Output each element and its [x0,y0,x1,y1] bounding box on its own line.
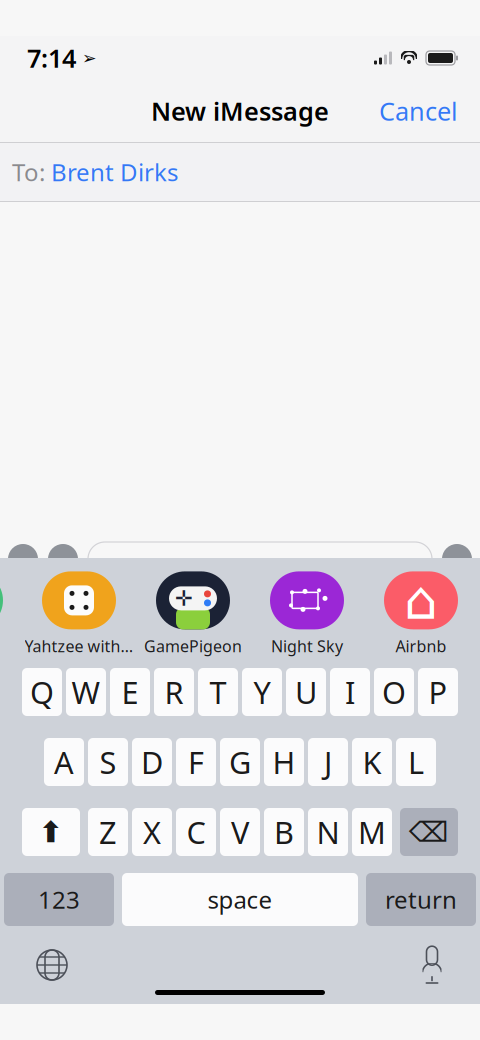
staticText: ✛ [175,586,193,610]
staticText: L [408,742,424,782]
staticText: H [272,742,295,782]
staticText: GamePigeon [144,635,242,657]
staticText: O [382,672,406,712]
button[interactable]: P [418,668,458,716]
button[interactable]: V [220,808,260,856]
staticText: C [186,812,205,852]
button[interactable]: F [176,738,216,786]
button[interactable]: Q [22,668,62,716]
button[interactable]: O [374,668,414,716]
button[interactable]: C [176,808,216,856]
button[interactable]: Cancel [365,84,472,138]
button[interactable]: M [352,808,392,856]
button[interactable]: Dictation [406,940,458,990]
staticText: J [324,742,332,782]
staticText: A [54,742,74,782]
staticText: V [231,812,249,852]
button[interactable]: U [286,668,326,716]
staticText: return [385,884,457,915]
staticText: S [99,742,116,782]
staticText: Q [30,672,54,712]
staticText: space [207,884,272,915]
staticText: N [316,812,339,852]
button[interactable]: space [122,873,358,926]
staticText: To: [12,156,45,188]
staticText: W [71,672,100,712]
button[interactable]: Night Sky [250,571,364,657]
button[interactable]: ✛ [136,571,250,657]
button[interactable]: W [66,668,106,716]
staticText: Cancel [379,94,458,128]
button[interactable]: J [308,738,348,786]
button[interactable]: ⌂ [364,571,478,657]
button[interactable]: R [154,668,194,716]
staticText: Yahtzee with… [24,635,133,657]
button[interactable]: N [308,808,348,856]
staticText: 123 [38,884,80,915]
button[interactable]: ⬆ [22,808,80,856]
button[interactable]: B [264,808,304,856]
staticText: ⌂ [404,570,438,631]
staticText: K [362,742,381,782]
staticText: U [295,672,317,712]
staticText: ⬆ [38,815,63,849]
staticText: 7:14 [27,41,76,75]
button[interactable]: S [88,738,128,786]
button[interactable]: ⌫ [400,808,458,856]
staticText: F [188,742,204,782]
staticText: E [121,672,138,712]
staticText: P [428,672,447,712]
button[interactable]: K [352,738,392,786]
staticText: Night Sky [271,635,343,657]
staticText: G [229,742,251,782]
staticText: T [209,672,226,712]
button[interactable]: I [330,668,370,716]
staticText: Airbnb [395,635,446,657]
button[interactable]: E [110,668,150,716]
button[interactable]: Y [242,668,282,716]
staticText: ⌫ [409,816,449,848]
button[interactable]: X [132,808,172,856]
button[interactable]: H [264,738,304,786]
button[interactable]: G [220,738,260,786]
staticText: Brent Dirks [45,156,178,188]
button[interactable]: return [366,873,476,926]
button[interactable]: A [44,738,84,786]
staticText: R [164,672,183,712]
button[interactable]: Yahtzee with… [22,571,136,657]
button[interactable]: L [396,738,436,786]
staticText: Z [99,812,117,852]
staticText: D [141,742,163,782]
button[interactable]: Z [88,808,128,856]
button[interactable]: D [132,738,172,786]
staticText: New iMessage [151,94,329,128]
button[interactable]: Switch keyboard [22,941,82,989]
button[interactable]: T [198,668,238,716]
staticText: ➢ [76,48,97,68]
staticText: Y [253,672,270,712]
button[interactable]: 123 [4,873,114,926]
staticText: M [358,812,386,852]
staticText: B [274,812,294,852]
staticText: X [143,812,161,852]
staticText: I [345,672,355,712]
